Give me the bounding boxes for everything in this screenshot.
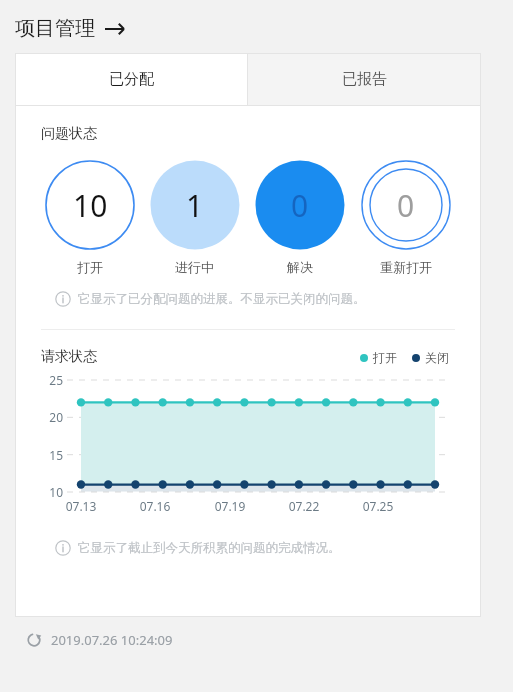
staticText: 25 [29, 372, 63, 388]
button[interactable]: 0 [353, 160, 459, 275]
staticText: 10 [29, 484, 63, 500]
button[interactable]: 1 [142, 160, 247, 275]
button[interactable]: 0 [247, 160, 353, 275]
staticText: 20 [29, 409, 63, 425]
staticText: 请求状态 [41, 348, 97, 366]
staticText: 解决 [287, 259, 313, 275]
staticText: 已分配 [109, 70, 154, 89]
staticText: 2019.07.26 10:24:09 [51, 631, 173, 649]
staticText: 0 [291, 185, 309, 226]
staticText: 项目管理 [15, 16, 95, 41]
button[interactable]: 项目管理 [15, 16, 126, 41]
staticText: 问题状态 [41, 125, 97, 143]
staticText: 它显示了截止到今天所积累的问题的完成情况。 [78, 540, 341, 556]
staticText: 07.19 [208, 498, 252, 514]
staticText: 关闭 [425, 350, 449, 365]
staticText: 打开 [373, 350, 397, 365]
staticText: 15 [29, 447, 63, 463]
button[interactable]: Refresh [25, 631, 173, 649]
staticText: 1 [186, 185, 204, 226]
button[interactable]: 10 [37, 160, 142, 275]
staticText: 07.22 [282, 498, 326, 514]
staticText: 10 [73, 185, 108, 226]
staticText: 07.25 [356, 498, 400, 514]
staticText: 进行中 [175, 259, 214, 275]
button[interactable]: 已报告 [248, 53, 481, 105]
staticText: 0 [397, 185, 415, 226]
staticText: 07.13 [59, 498, 103, 514]
staticText: 重新打开 [380, 259, 432, 275]
staticText: 已报告 [342, 70, 387, 89]
other: Refresh [25, 631, 43, 649]
staticText: 打开 [77, 259, 103, 275]
staticText: 它显示了已分配问题的进展。不显示已关闭的问题。 [78, 291, 366, 307]
button[interactable]: 已分配 [15, 53, 247, 105]
staticText: 07.16 [133, 498, 177, 514]
